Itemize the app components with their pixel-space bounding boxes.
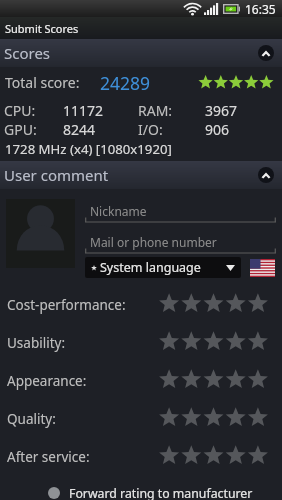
button[interactable]: System language <box>85 257 241 278</box>
staticText: System language <box>100 259 201 276</box>
staticText: RAM: <box>138 101 173 120</box>
staticText: I/O: <box>138 120 163 139</box>
staticText: Mail or phone number <box>90 234 217 250</box>
button[interactable]: Collapse section <box>258 45 274 61</box>
staticText: Total score: <box>5 73 80 92</box>
staticText: Appearance: <box>7 372 87 390</box>
staticText: Submit Scores <box>5 21 79 36</box>
staticText: Nickname <box>90 203 147 219</box>
button[interactable]: Quality: <box>0 400 282 438</box>
staticText: CPU: <box>4 101 36 120</box>
staticText: Scores <box>4 43 51 63</box>
button[interactable]: Collapse section <box>258 167 274 183</box>
staticText: User comment <box>4 165 109 185</box>
staticText: 16:35 <box>245 1 276 17</box>
staticText: After service: <box>7 448 90 466</box>
button[interactable]: Usability: <box>0 324 282 362</box>
staticText: 11172 <box>63 101 104 120</box>
button[interactable]: Cost-performance: <box>0 286 282 324</box>
staticText: Cost-performance: <box>7 296 126 314</box>
staticText: 8244 <box>63 120 96 139</box>
button[interactable]: Scores <box>0 39 282 67</box>
button[interactable]: Appearance: <box>0 362 282 400</box>
button[interactable]: User comment <box>0 161 282 189</box>
staticText: 1728 MHz (x4) [1080x1920] <box>5 140 172 158</box>
staticText: Quality: <box>7 410 56 428</box>
staticText: 906 <box>205 120 230 139</box>
staticText: 3967 <box>205 101 238 120</box>
staticText: Forward rating to manufacturer <box>69 485 253 500</box>
button[interactable]: Mail or phone number <box>85 230 276 254</box>
staticText: GPU: <box>4 120 37 139</box>
button[interactable]: Forward rating to manufacturer <box>0 485 282 500</box>
button[interactable]: Nickname <box>85 199 276 223</box>
staticText: 24289 <box>100 71 151 93</box>
button[interactable]: After service: <box>0 438 282 476</box>
button[interactable]: Profile photo <box>6 199 75 268</box>
staticText: Usability: <box>7 334 66 352</box>
